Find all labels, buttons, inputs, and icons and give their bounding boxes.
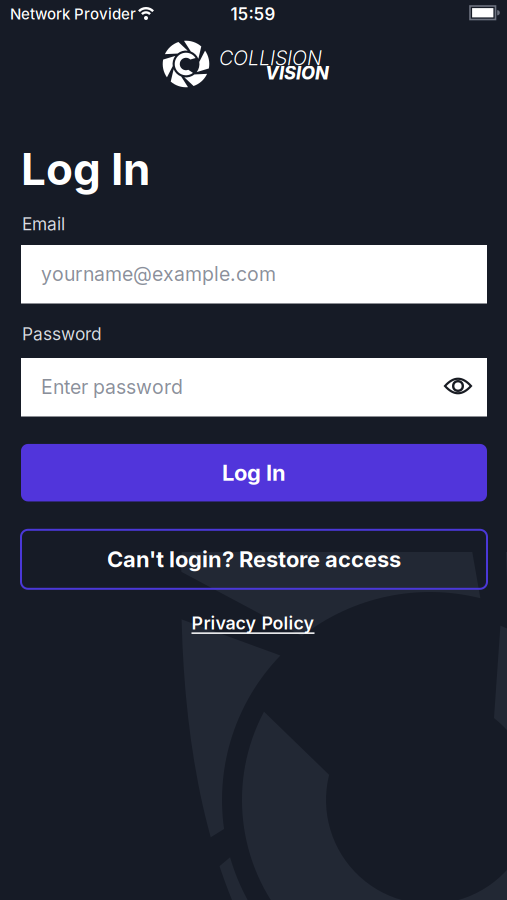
staticText: Email <box>22 213 65 234</box>
staticText: Password <box>22 323 102 344</box>
staticText: VISION <box>265 62 329 84</box>
staticText: Network Provider <box>10 5 136 23</box>
button[interactable]: Log In <box>21 444 487 501</box>
button[interactable]: Can't login? Restore access <box>21 530 487 589</box>
staticText: Log In <box>21 142 150 196</box>
staticText: Can't login? Restore access <box>107 546 401 573</box>
staticText: Log In <box>222 459 286 486</box>
staticText: COLLISION <box>219 46 322 70</box>
button[interactable]: Privacy Policy <box>191 612 314 634</box>
button[interactable]: Show password <box>441 374 475 398</box>
staticText: yourname@example.com <box>41 262 276 286</box>
staticText: 15:59 <box>230 4 275 24</box>
staticText: Privacy Policy <box>191 612 314 634</box>
staticText: Enter password <box>41 375 183 399</box>
